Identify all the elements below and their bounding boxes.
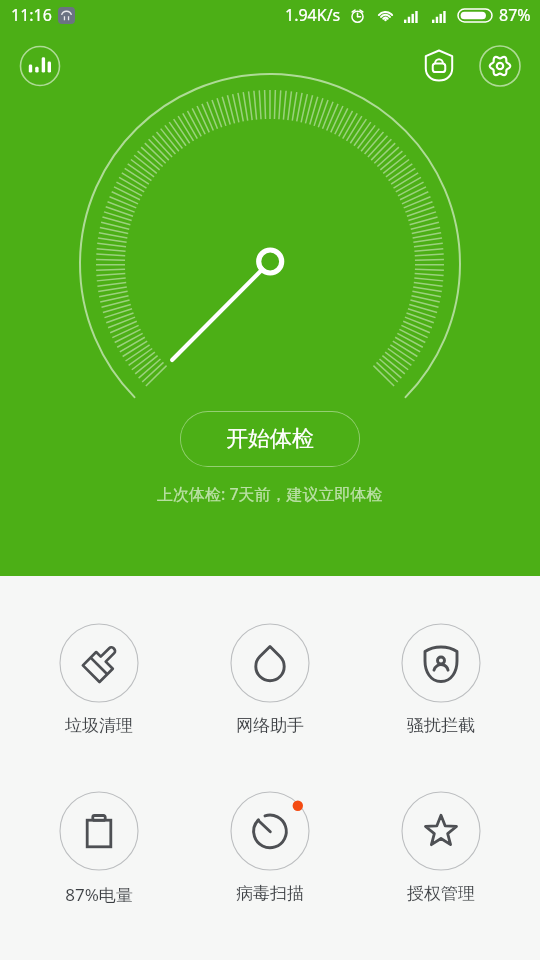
button[interactable]: 网络助手	[184, 620, 355, 736]
button[interactable]: 骚扰拦截	[355, 620, 526, 736]
staticText: 87%电量	[65, 883, 133, 906]
button[interactable]: 病毒扫描	[184, 788, 355, 904]
staticText: 11:16	[11, 4, 52, 26]
staticText: 网络助手	[236, 715, 304, 736]
staticText: 开始体检	[226, 425, 314, 453]
button[interactable]: 87%电量	[14, 788, 184, 906]
button[interactable]: 授权管理	[355, 788, 526, 904]
staticText: 病毒扫描	[236, 883, 304, 904]
button[interactable]: Security scan	[414, 41, 464, 91]
staticText: 上次体检: 7天前，建议立即体检	[157, 483, 383, 505]
button[interactable]: 开始体检	[180, 411, 360, 467]
staticText: 授权管理	[407, 883, 475, 904]
button[interactable]: 垃圾清理	[14, 620, 184, 736]
button[interactable]: Usage statistics	[15, 41, 65, 91]
staticText: 1.94K/s	[285, 4, 341, 26]
staticText: 骚扰拦截	[407, 715, 475, 736]
button[interactable]: Settings	[475, 41, 525, 91]
staticText: 垃圾清理	[65, 715, 133, 736]
staticText: 87%	[499, 4, 531, 26]
